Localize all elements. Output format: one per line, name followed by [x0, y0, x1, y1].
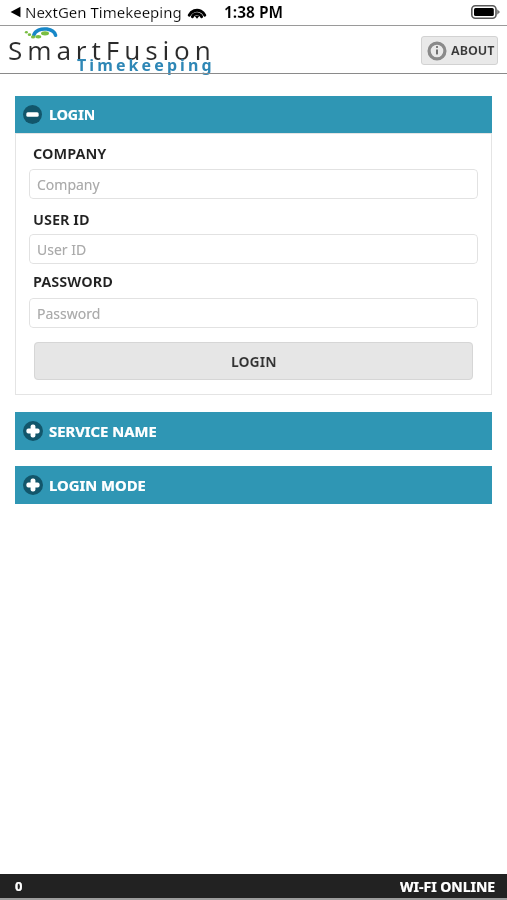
button[interactable]: SERVICE NAME	[15, 412, 492, 450]
staticText: LOGIN MODE	[49, 475, 146, 495]
staticText: SERVICE NAME	[49, 421, 157, 441]
staticText: 0	[15, 877, 23, 895]
button[interactable]: LOGIN	[34, 342, 473, 380]
staticText: WI-FI ONLINE	[400, 877, 496, 896]
staticText: LOGIN	[49, 105, 96, 124]
staticText: PASSWORD	[33, 271, 113, 291]
staticText: 1:38 PM	[224, 1, 284, 22]
staticText: Password	[37, 304, 101, 323]
staticText: COMPANY	[33, 143, 107, 163]
button[interactable]: LOGIN MODE	[15, 466, 492, 504]
button[interactable]: LOGIN	[15, 96, 492, 133]
button[interactable]: Company	[29, 169, 478, 199]
staticText: LOGIN	[231, 352, 277, 371]
button[interactable]: Password	[29, 298, 478, 328]
staticText: SmartFusion	[8, 32, 216, 67]
staticText: User ID	[37, 240, 87, 259]
button[interactable]: User ID	[29, 234, 478, 264]
staticText: ABOUT	[451, 42, 495, 59]
staticText: NextGen Timekeeping	[25, 2, 182, 22]
staticText: Timekeeping	[77, 54, 215, 76]
staticText: Company	[37, 175, 100, 194]
button[interactable]: ABOUT	[421, 36, 498, 65]
staticText: USER ID	[33, 209, 90, 229]
